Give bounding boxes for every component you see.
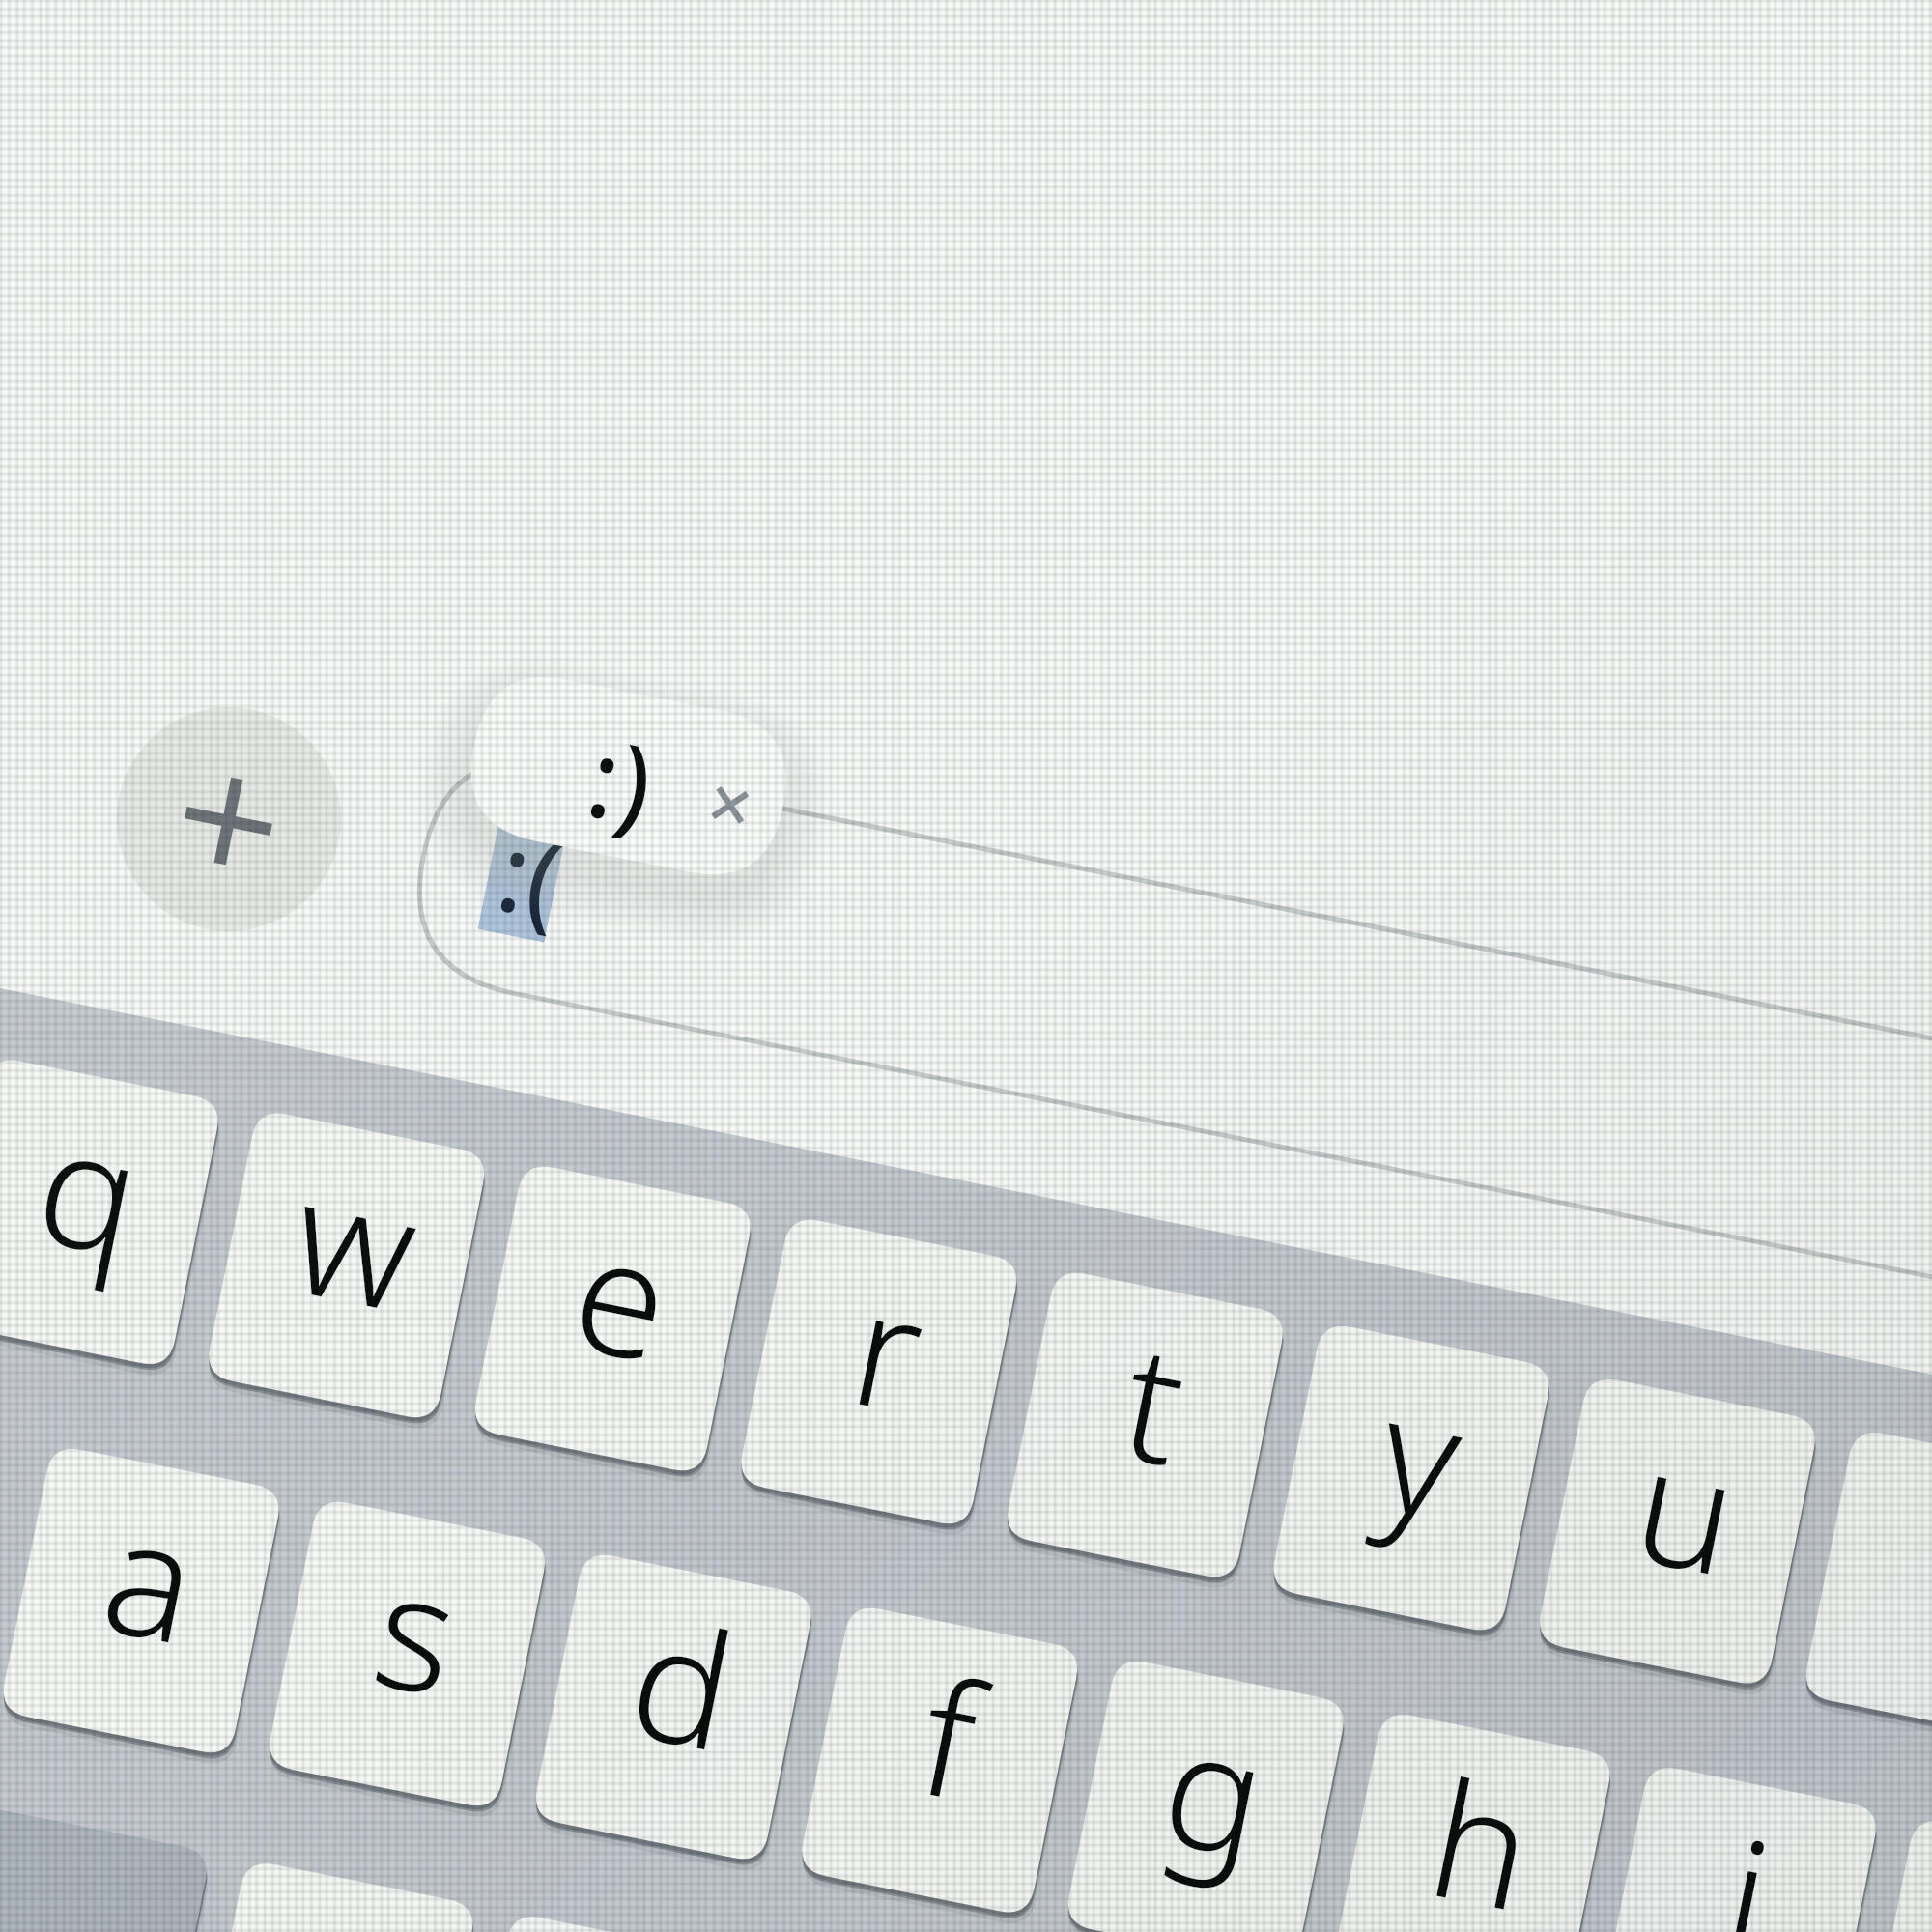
button[interactable]: Key s	[290, 1518, 526, 1790]
button[interactable]: Key i	[1795, 1448, 1932, 1720]
button[interactable]: Key r	[761, 1236, 997, 1508]
button[interactable]: Key q	[0, 1076, 198, 1349]
button[interactable]: Dismiss suggestion	[698, 774, 762, 838]
button[interactable]: Key e	[495, 1182, 730, 1455]
button[interactable]: Key j	[1620, 1783, 1856, 1932]
button[interactable]: Message input field	[417, 734, 1924, 1014]
button[interactable]: Key h	[1354, 1730, 1590, 1932]
button[interactable]: Key f	[822, 1624, 1058, 1896]
button[interactable]: Key d	[555, 1571, 791, 1843]
button[interactable]: Key t	[1027, 1289, 1263, 1561]
button[interactable]: Key u	[1559, 1395, 1795, 1667]
button[interactable]: Key g	[1088, 1677, 1323, 1932]
button[interactable]: Key y	[1293, 1342, 1529, 1614]
button[interactable]: Autocorrect suggestion :)	[454, 715, 802, 889]
button[interactable]: Key a	[23, 1464, 259, 1737]
button[interactable]: Key w	[229, 1129, 465, 1402]
button[interactable]: Add attachment	[117, 708, 341, 932]
